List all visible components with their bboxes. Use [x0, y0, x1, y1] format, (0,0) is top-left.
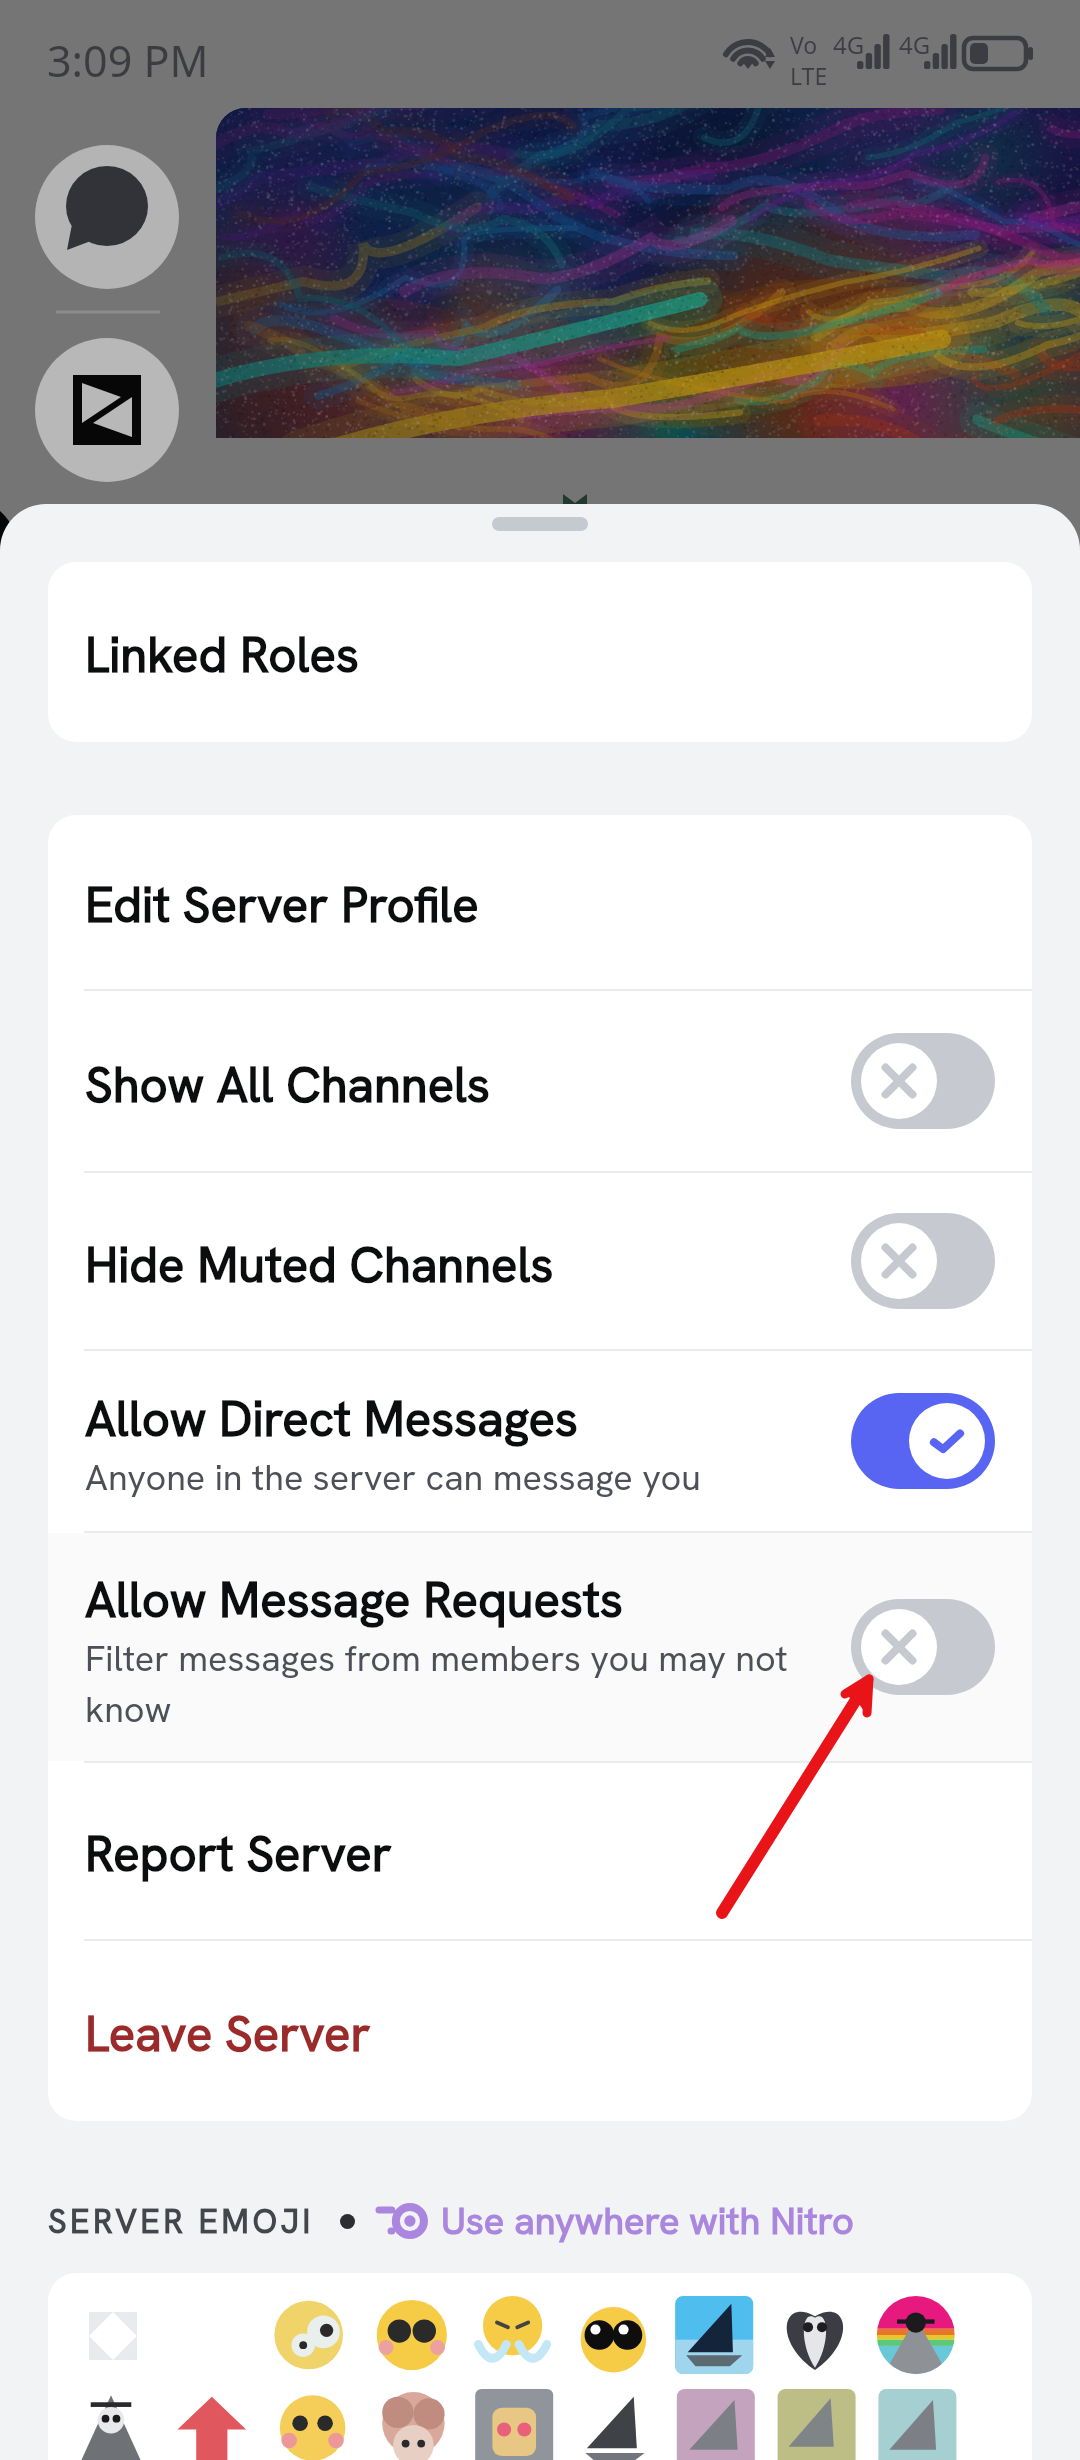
staticText: Report Server	[85, 1822, 392, 1886]
staticText: Hide Muted Channels	[85, 1233, 554, 1297]
staticText: Allow Message Requests	[85, 1568, 623, 1632]
staticText: Leave Server	[85, 2002, 371, 2066]
staticText: Linked Roles	[85, 623, 359, 687]
staticText: Show All Channels	[85, 1053, 491, 1117]
button[interactable]: Switch off	[851, 1599, 995, 1695]
staticText: Anyone in the server can message you	[85, 1454, 701, 1501]
staticText: Edit Server Profile	[85, 873, 479, 937]
button[interactable]: Allow Direct Messages	[48, 1351, 1032, 1531]
button[interactable]: Linked Roles	[48, 562, 1032, 742]
button[interactable]: Edit Server Profile	[48, 815, 1032, 989]
staticText: Vo	[790, 29, 818, 60]
button[interactable]: Leave Server	[48, 1941, 1032, 2121]
staticText: Allow Direct Messages	[85, 1387, 579, 1451]
staticText: Filter messages from members you may not…	[85, 1635, 805, 1733]
staticText: Use anywhere with Nitro	[441, 2196, 854, 2246]
staticText: 4G	[899, 28, 931, 61]
button[interactable]: Switch off	[851, 1213, 995, 1309]
button[interactable]: Switch on	[851, 1393, 995, 1489]
button[interactable]: Hide Muted Channels	[48, 1173, 1032, 1349]
button[interactable]: Switch off	[851, 1033, 995, 1129]
button[interactable]: Show All Channels	[48, 991, 1032, 1171]
button[interactable]: Allow Message Requests	[48, 1533, 1032, 1761]
button[interactable]: Report Server	[48, 1763, 1032, 1939]
staticText: 3:09 PM	[47, 31, 209, 90]
staticText: LTE	[790, 60, 828, 91]
staticText: SERVER EMOJI	[48, 2200, 314, 2243]
staticText: 4G	[833, 28, 865, 61]
